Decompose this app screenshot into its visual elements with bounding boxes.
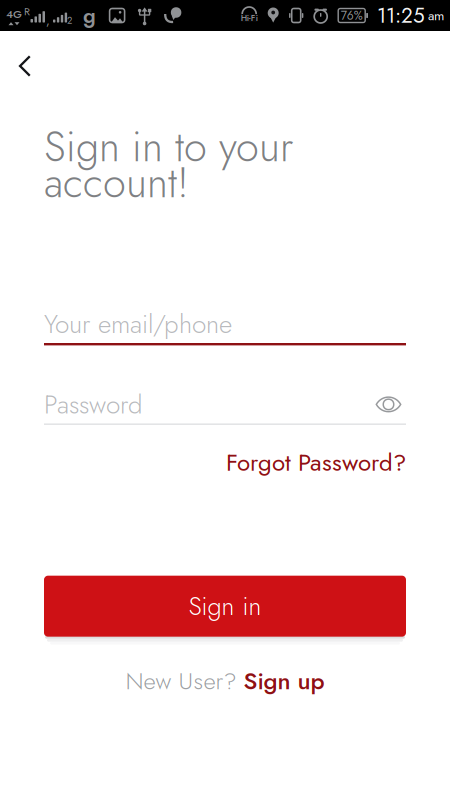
staticText: Forgot Password? [226, 445, 406, 480]
button[interactable]: Sign in [44, 576, 406, 637]
staticText: Sign in to your [44, 117, 293, 177]
staticText: Sign in [188, 588, 261, 624]
staticText: Your email/phone [44, 305, 232, 343]
staticText: Hi-Fi [241, 12, 258, 24]
staticText: New User? [125, 664, 236, 698]
staticText: 2 [67, 14, 72, 27]
staticText: account! [44, 153, 189, 213]
button[interactable]: Show password [376, 392, 406, 416]
staticText: 4G [6, 6, 22, 22]
button[interactable]: Sign up [236, 664, 324, 698]
staticText: R [24, 4, 30, 19]
staticText: g [83, 0, 96, 31]
staticText: 11:25 [377, 1, 425, 30]
staticText: Sign up [243, 664, 324, 698]
button[interactable]: Forgot Password? [226, 445, 406, 480]
staticText: am [428, 6, 444, 25]
staticText: , [46, 12, 50, 29]
staticText: Password [44, 386, 143, 423]
button[interactable]: Back [2, 40, 48, 92]
staticText: 76% [341, 7, 363, 24]
